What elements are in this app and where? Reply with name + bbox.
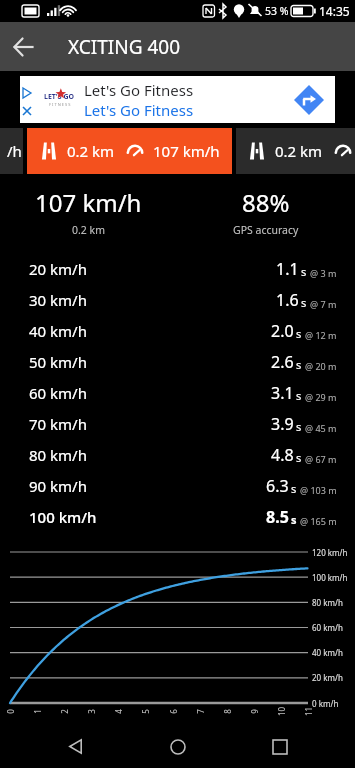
staticText: @ 45 m	[305, 422, 337, 434]
button[interactable]: 0.2 km	[27, 128, 232, 174]
staticText: 2.0	[271, 320, 294, 342]
button[interactable]: 60 km/h	[29, 377, 337, 408]
button[interactable]: Recent apps	[252, 725, 308, 768]
staticText: 6	[168, 709, 179, 714]
button[interactable]: 80 km/h	[29, 439, 337, 470]
button[interactable]: Home	[150, 725, 206, 768]
staticText: @ 165 m	[300, 515, 337, 527]
button[interactable]: 50 km/h	[29, 346, 337, 377]
staticText: 8.5	[266, 506, 289, 528]
staticText: s	[296, 326, 302, 341]
staticText: 5	[140, 709, 151, 714]
button[interactable]: 20 km/h	[29, 253, 337, 284]
staticText: s	[296, 357, 302, 372]
staticText: Let's Go Fitness	[84, 100, 194, 120]
staticText: 107 km/h	[153, 141, 220, 161]
staticText: 50 km/h	[29, 352, 87, 372]
staticText: 1.1	[276, 258, 299, 280]
staticText: 3.9	[271, 413, 294, 435]
staticText: F I T N E S S	[49, 102, 71, 107]
button[interactable]: Back	[47, 725, 103, 768]
staticText: s	[296, 388, 302, 403]
staticText: 90 km/h	[29, 476, 87, 496]
staticText: s	[291, 512, 297, 527]
staticText: 70 km/h	[29, 414, 87, 434]
staticText: 80 km/h	[312, 597, 343, 608]
staticText: @ 20 m	[305, 360, 337, 372]
button[interactable]: 70 km/h	[29, 408, 337, 439]
staticText: 60 km/h	[29, 383, 87, 403]
staticText: 80 km/h	[29, 445, 87, 465]
staticText: @ 67 m	[305, 453, 337, 465]
staticText: 88%	[242, 186, 290, 219]
button[interactable]: LET'S GO	[20, 76, 335, 123]
staticText: 40 km/h	[29, 321, 87, 341]
staticText: @ 103 m	[300, 484, 337, 496]
staticText: @ 7 m	[310, 298, 337, 310]
staticText: s	[296, 450, 302, 465]
staticText: 53 %	[265, 4, 289, 18]
staticText: 0	[5, 709, 16, 714]
staticText: 1	[32, 709, 43, 714]
staticText: 3.1	[271, 382, 294, 404]
staticText: 2.6	[271, 351, 294, 373]
staticText: 14:35	[319, 3, 350, 19]
staticText: @ 3 m	[310, 267, 337, 279]
staticText: 120 km/h	[312, 547, 348, 558]
staticText: s	[301, 264, 307, 279]
staticText: s	[296, 419, 302, 434]
staticText: @ 12 m	[305, 329, 337, 341]
staticText: LET'S GO	[44, 92, 75, 102]
staticText: 8	[222, 709, 233, 714]
staticText: 60 km/h	[312, 622, 343, 633]
staticText: 1.6	[276, 289, 299, 311]
staticText: 100 km/h	[29, 507, 97, 527]
staticText: /h	[7, 141, 22, 161]
staticText: 11	[302, 706, 313, 716]
staticText: s	[301, 295, 307, 310]
staticText: 2	[59, 709, 70, 714]
staticText: 0.2 km	[275, 141, 323, 161]
staticText: GPS accuracy	[233, 223, 299, 237]
staticText: 4.8	[271, 444, 294, 466]
staticText: XCITING 400	[68, 34, 181, 60]
staticText: 40 km/h	[312, 647, 343, 658]
button[interactable]: 40 km/h	[29, 315, 337, 346]
staticText: @ 29 m	[305, 391, 337, 403]
staticText: 7	[195, 709, 206, 714]
staticText: 20 km/h	[312, 672, 343, 683]
staticText: 20 km/h	[29, 259, 87, 279]
staticText: 100 km/h	[312, 572, 348, 583]
staticText: 30 km/h	[29, 290, 87, 310]
button[interactable]: 30 km/h	[29, 284, 337, 315]
button[interactable]: 90 km/h	[29, 470, 337, 501]
button[interactable]: Back	[0, 23, 48, 71]
button[interactable]: /h	[0, 128, 23, 174]
staticText: 0.2 km	[72, 223, 105, 237]
staticText: 6.3	[266, 475, 289, 497]
staticText: 0 km/h	[312, 698, 339, 709]
staticText: 3	[86, 709, 97, 714]
staticText: 9	[249, 709, 260, 714]
staticText: s	[291, 481, 297, 496]
button[interactable]: 0.2 km	[236, 128, 355, 174]
button[interactable]: 100 km/h	[29, 501, 337, 532]
staticText: 10	[275, 706, 286, 716]
staticText: 0.2 km	[67, 141, 115, 161]
staticText: 4	[113, 709, 124, 714]
staticText: 107 km/h	[35, 186, 142, 219]
staticText: Let's Go Fitness	[84, 80, 194, 100]
